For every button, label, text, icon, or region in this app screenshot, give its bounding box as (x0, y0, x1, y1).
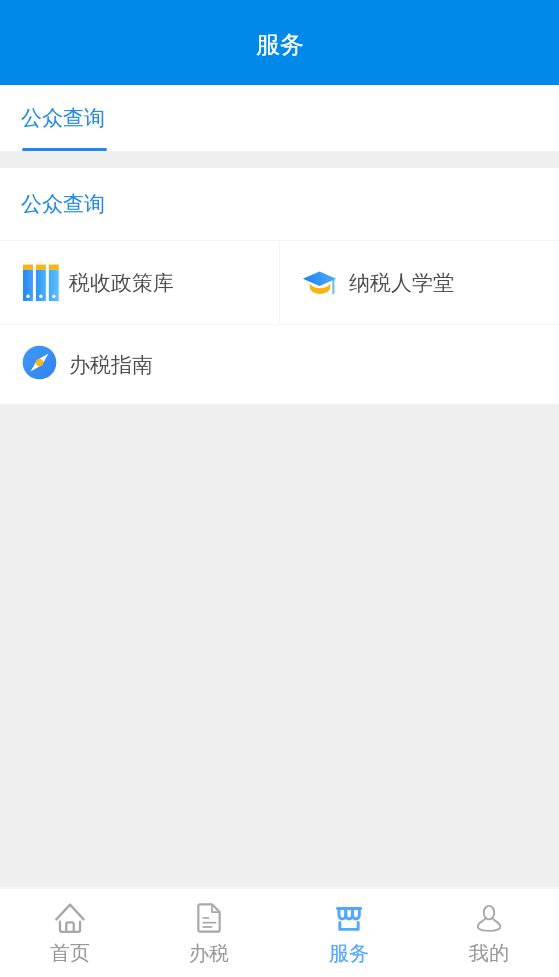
staticText: 服务 (329, 941, 369, 966)
staticText: 办税指南 (69, 352, 153, 378)
button[interactable]: Home (0, 889, 139, 977)
staticText: 税收政策库 (69, 270, 174, 296)
staticText: 服务 (256, 30, 304, 60)
staticText: 办税 (189, 941, 229, 966)
other: Tax policy library (21, 264, 58, 301)
staticText: 首页 (50, 941, 90, 966)
staticText: 公众查询 (21, 105, 105, 131)
staticText: 纳税人学堂 (349, 270, 454, 296)
staticText: 我的 (469, 941, 509, 966)
button[interactable]: 公众查询 (13, 85, 116, 151)
other: Taxpayer school (301, 264, 338, 301)
other: Profile (474, 903, 504, 933)
button[interactable]: Profile (419, 889, 559, 977)
button[interactable]: Tax handling (139, 889, 279, 977)
other: Home (55, 903, 85, 933)
button[interactable]: Tax policy library (0, 241, 279, 324)
staticText: 公众查询 (21, 191, 105, 217)
button[interactable]: Tax handling guide (0, 325, 279, 404)
button[interactable]: Taxpayer school (280, 241, 559, 324)
other: Tax handling (194, 903, 224, 933)
button[interactable]: Services (279, 889, 419, 977)
other: Tax handling guide (21, 344, 58, 381)
other: Services (334, 903, 364, 933)
